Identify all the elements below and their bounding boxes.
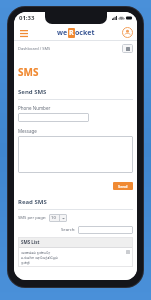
staticText: Dashboard / SMS [18,46,51,51]
staticText: R [69,28,74,38]
staticText: SMS [18,65,39,79]
staticText: Send [118,184,128,189]
button[interactable]: 10 [49,214,67,222]
staticText: Send SMS [18,88,47,96]
staticText: Read SMS [18,198,47,206]
staticText: ocket [75,28,95,38]
staticText: Message [18,128,37,134]
button[interactable]: வணக்கம் நண்பரே உங்களை வரவேற்கிறோம் நன்றி [21,250,130,265]
staticText: we [57,28,68,38]
button[interactable]: Menu [18,27,30,39]
staticText: Phone Number [18,105,51,111]
button[interactable]: Account [122,27,133,38]
button[interactable]: Options [122,44,133,53]
staticText: SMS List [21,239,40,245]
button[interactable] [18,113,89,122]
staticText: 01:33 [19,14,35,22]
staticText: Search: [61,227,76,233]
staticText: வணக்கம் நண்பரே உங்களை வரவேற்கிறோம் நன்றி [21,250,126,265]
button[interactable] [78,226,133,234]
button[interactable] [18,136,133,173]
button[interactable]: Send [113,182,133,190]
staticText: 10 [51,215,56,221]
staticText: SMS per page: [18,215,47,221]
